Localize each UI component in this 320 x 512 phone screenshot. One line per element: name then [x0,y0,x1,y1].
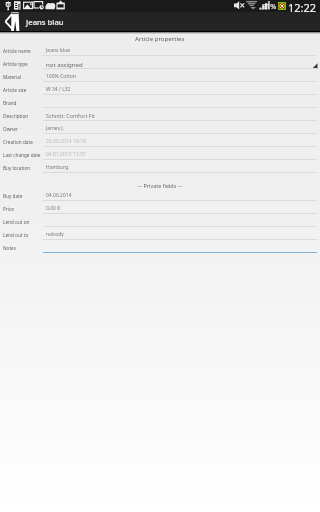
staticText: Jeans blau [26,17,64,27]
button[interactable]: Article name [0,43,320,56]
staticText: 04.06.2014 [46,192,72,199]
staticText: Notes [3,245,44,251]
staticText: 91% [262,1,277,11]
staticText: Creation date [3,139,44,145]
button[interactable]: Creation date [0,134,320,147]
staticText: Lend out to [3,232,44,238]
button[interactable]: Lend out on [0,214,320,227]
staticText: nobody [46,231,64,238]
staticText: Article type [3,61,44,67]
staticText: Article size [3,87,44,93]
button[interactable]: Description [0,108,320,121]
button[interactable]: Article size [0,82,320,95]
button[interactable]: Brand [0,95,320,108]
staticText: not assigned [46,60,83,68]
staticText: W 34 / L32 [46,86,71,93]
button[interactable]: Notes [0,240,320,253]
button[interactable]: Buy date [0,188,320,201]
staticText: Article properties [135,34,185,42]
staticText: James J. [46,125,65,132]
staticText: 12:22 [288,0,317,12]
staticText: Last change date [3,152,44,158]
staticText: 04.01.2015 11:37 [46,151,86,158]
button[interactable]: Price [0,201,320,214]
staticText: 0,00 € [46,205,61,212]
button[interactable]: Material [0,69,320,82]
staticText: Lend out on [3,219,44,225]
staticText: 100% Cotton [46,73,76,80]
staticText: Price [3,206,44,212]
button[interactable]: Buy location [0,160,320,173]
staticText: Description [3,113,44,119]
staticText: Buy date [3,193,44,199]
staticText: Schnitt: Comfort Fit [46,112,95,119]
staticText: Buy location [3,165,44,171]
button[interactable]: Article type [0,56,320,69]
staticText: Hamburg [46,164,69,171]
staticText: Brand [3,100,44,106]
staticText: Owner [3,126,44,132]
staticText: --- Private fields --- [137,182,183,189]
staticText: Article name [3,48,44,54]
button[interactable]: Lend out to [0,227,320,240]
staticText: Material [3,74,44,80]
staticText: Jeans blue [46,47,71,54]
button[interactable]: Last change date [0,147,320,160]
button[interactable]: Owner [0,121,320,134]
staticText: 26.09.2014 18:10 [46,138,86,145]
button[interactable]: Navigate up [0,12,24,31]
